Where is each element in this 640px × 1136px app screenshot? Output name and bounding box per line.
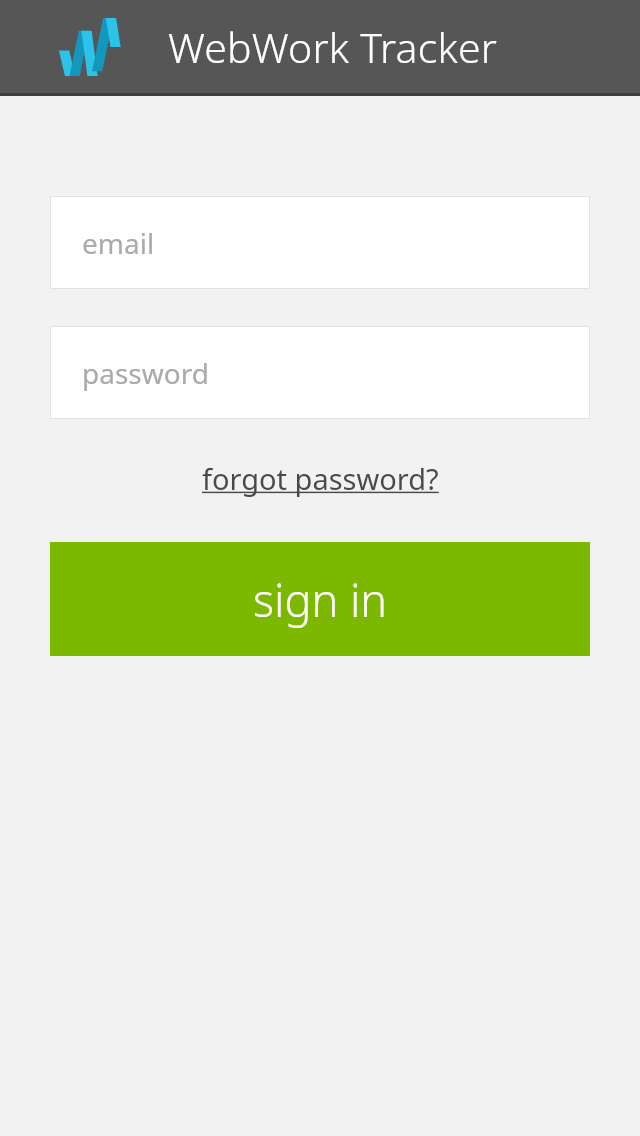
button[interactable]: password (50, 326, 590, 419)
staticText: forgot password? (202, 459, 439, 498)
other: WebWork Tracker logo (56, 18, 122, 76)
staticText: sign in (253, 569, 388, 630)
button[interactable]: forgot password? (196, 455, 445, 502)
button[interactable]: email (50, 196, 590, 289)
button[interactable]: sign in (50, 542, 590, 656)
staticText: password (82, 354, 209, 392)
staticText: email (82, 224, 155, 262)
staticText: WebWork Tracker (168, 19, 498, 75)
